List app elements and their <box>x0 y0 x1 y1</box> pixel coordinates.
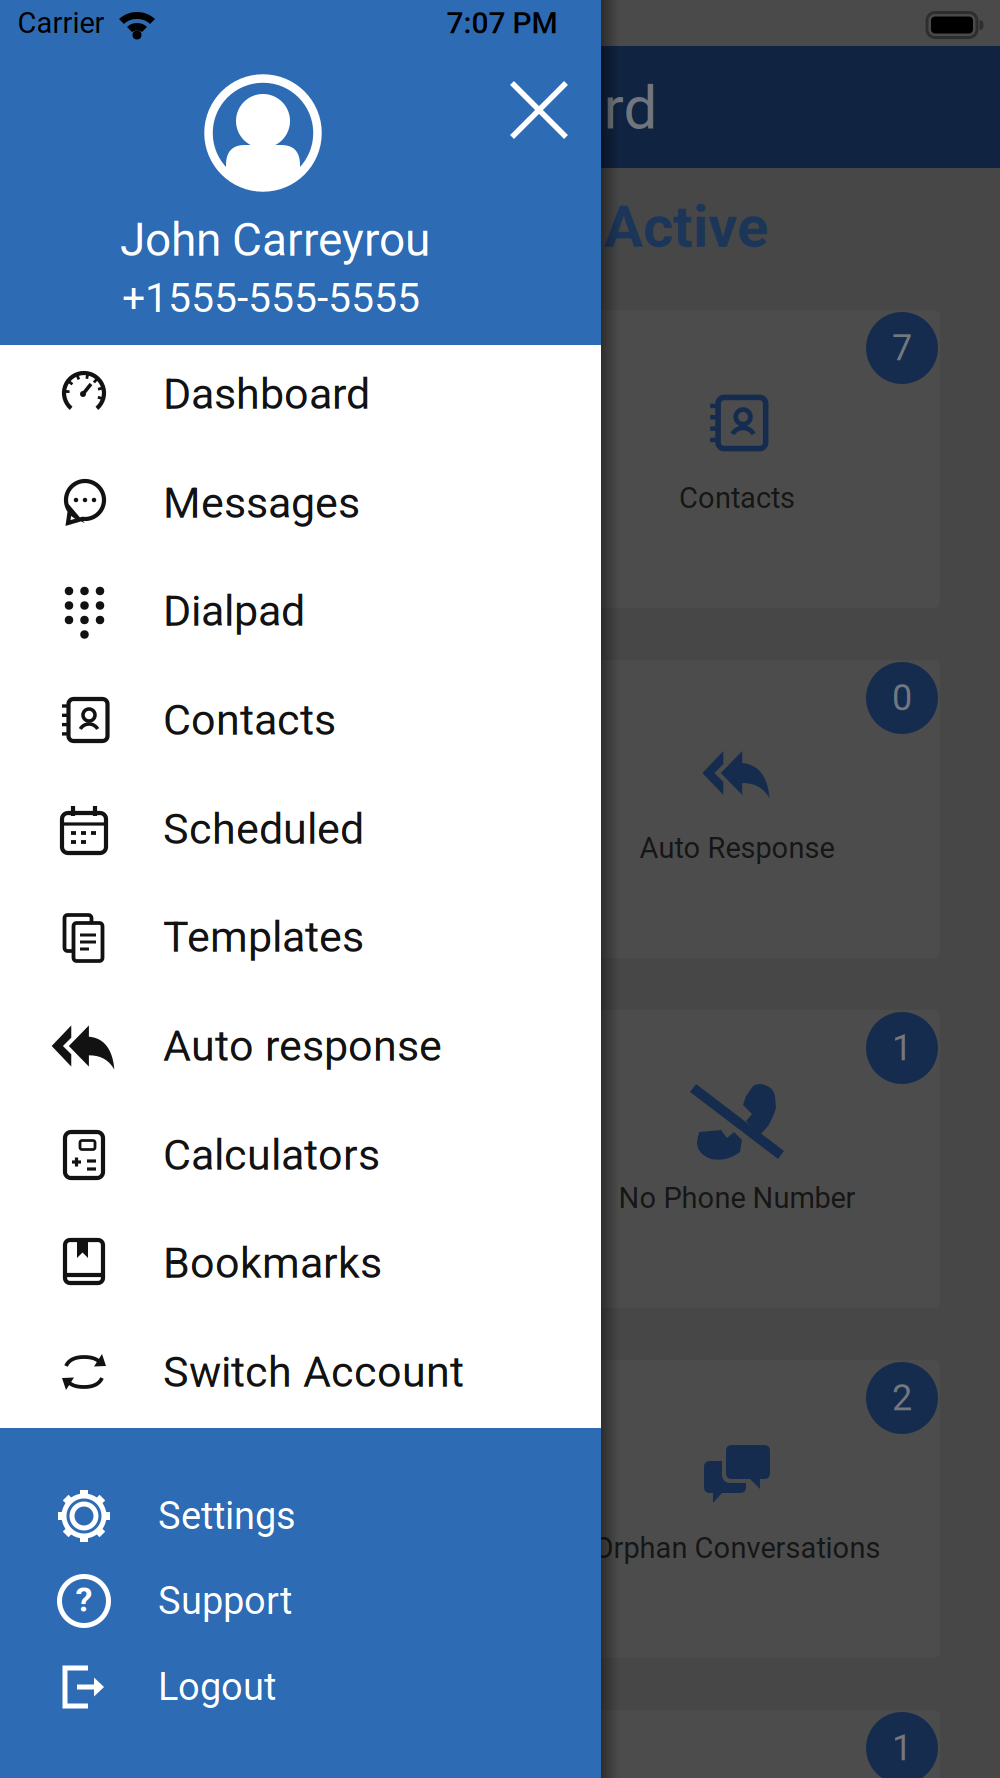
staticText: Contacts <box>163 695 336 745</box>
staticText: No Phone Number <box>618 1181 855 1215</box>
staticText: Settings <box>158 1494 296 1538</box>
button[interactable]: Calculators <box>0 1101 601 1209</box>
button[interactable]: Dashboard <box>0 340 601 448</box>
button[interactable]: Contacts <box>0 666 601 774</box>
staticText: 7:07 PM <box>446 5 557 41</box>
staticText: Scheduled <box>163 804 364 854</box>
button[interactable]: ? <box>0 1558 601 1643</box>
button[interactable]: Auto Response <box>523 660 940 958</box>
button[interactable]: Templates <box>0 883 601 991</box>
staticText: Bookmarks <box>163 1238 382 1288</box>
button[interactable]: Bookmarks <box>0 1209 601 1317</box>
staticText: 1 <box>892 1727 912 1769</box>
staticText: Auto Response <box>639 831 834 865</box>
staticText: +1555-555-5555 <box>122 274 420 322</box>
button[interactable]: Messages <box>0 449 601 557</box>
staticText: Orphan Conversations <box>593 1531 880 1565</box>
staticText: 1 <box>892 1027 912 1069</box>
button[interactable]: Settings <box>0 1473 601 1558</box>
staticText: Active <box>604 193 768 261</box>
staticText: Auto response <box>163 1021 442 1071</box>
button[interactable]: Switch Account <box>0 1318 601 1426</box>
button[interactable]: Contacts <box>523 310 940 608</box>
staticText: Carrier <box>17 6 104 40</box>
staticText: Calculators <box>163 1130 380 1180</box>
button[interactable]: Close <box>509 80 569 140</box>
button[interactable]: Logout <box>0 1644 601 1729</box>
staticText: 0 <box>892 677 912 719</box>
staticText: 2 <box>892 1377 912 1419</box>
button[interactable]: No Phone Number <box>523 1010 940 1308</box>
button[interactable]: Scheduled <box>0 775 601 883</box>
staticText: ? <box>75 1580 92 1620</box>
staticText: Switch Account <box>163 1347 464 1397</box>
staticText: Messages <box>163 478 360 528</box>
staticText: Logout <box>158 1665 276 1709</box>
button[interactable]: Orphan Conversations <box>523 1360 940 1658</box>
staticText: Support <box>158 1579 292 1623</box>
button[interactable]: Card <box>523 1710 940 1778</box>
staticText: Dashboard <box>366 73 657 143</box>
button[interactable]: Auto response <box>0 992 601 1100</box>
staticText: 7 <box>892 327 912 369</box>
staticText: Dialpad <box>163 586 305 636</box>
button[interactable]: Dialpad <box>0 557 601 665</box>
staticText: Contacts <box>679 481 795 515</box>
staticText: John Carreyrou <box>120 213 430 267</box>
staticText: Templates <box>163 912 364 962</box>
staticText: Dashboard <box>163 369 370 419</box>
